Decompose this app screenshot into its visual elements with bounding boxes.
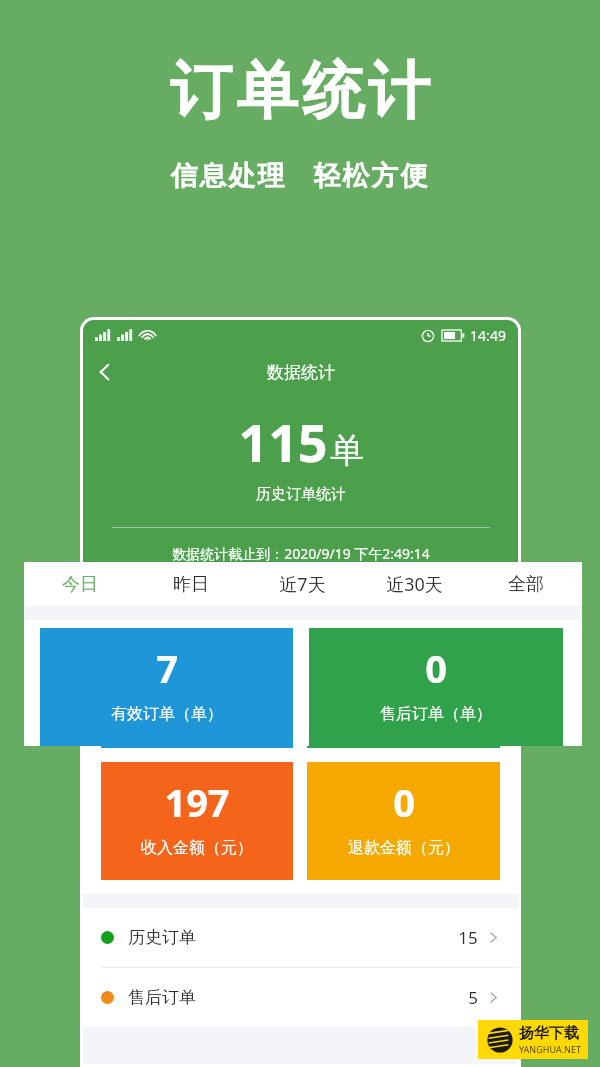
staticText: 0	[425, 642, 447, 694]
staticText: 115	[238, 406, 328, 477]
button[interactable]: 近7天	[246, 562, 358, 606]
staticText: 退款金额（元）	[348, 838, 460, 858]
staticText: 有效订单（单）	[111, 704, 223, 724]
button[interactable]: Back	[83, 350, 127, 394]
staticText: 近7天	[279, 572, 326, 597]
staticText: 历史订单统计	[256, 485, 346, 504]
staticText: 扬华下载	[519, 1024, 579, 1043]
staticText: 数据统计截止到：2020/9/19 下午2:49:14	[172, 544, 430, 563]
staticText: 售后订单（单）	[348, 706, 460, 726]
button[interactable]: 0	[307, 762, 500, 880]
staticText: 197	[164, 776, 230, 828]
button[interactable]: 7	[40, 628, 293, 746]
staticText: 今日	[62, 573, 98, 596]
button[interactable]: 7	[101, 630, 293, 748]
button[interactable]: 全部	[470, 562, 582, 606]
staticText: 昨日	[173, 573, 209, 596]
staticText: 订单统计	[168, 52, 432, 130]
staticText: 15	[458, 926, 478, 949]
staticText: 售后订单（单）	[380, 704, 492, 724]
staticText: 历史订单	[128, 927, 196, 948]
staticText: 14:49	[470, 326, 506, 345]
staticText: 7	[156, 642, 178, 694]
staticText: 全部	[508, 573, 544, 596]
staticText: 收入金额（元）	[141, 838, 253, 858]
staticText: 信息处理 轻松方便	[170, 156, 430, 193]
button[interactable]: 昨日	[135, 562, 246, 606]
button[interactable]: 0	[309, 628, 563, 746]
button[interactable]: 0	[307, 630, 500, 748]
staticText: 近30天	[386, 572, 443, 597]
staticText: 单	[330, 429, 364, 472]
staticText: 数据统计	[267, 362, 335, 383]
button[interactable]: 历史订单	[83, 908, 518, 967]
staticText: 售后订单	[128, 987, 196, 1008]
staticText: 0	[393, 776, 415, 828]
staticText: 有效订单（单）	[141, 706, 253, 726]
button[interactable]: 近30天	[358, 562, 470, 606]
staticText: YANGHUA.NET	[519, 1043, 581, 1055]
staticText: 5	[468, 986, 478, 1009]
button[interactable]: 197	[101, 762, 293, 880]
button[interactable]: 今日	[24, 562, 135, 606]
button[interactable]: 售后订单	[83, 968, 518, 1027]
